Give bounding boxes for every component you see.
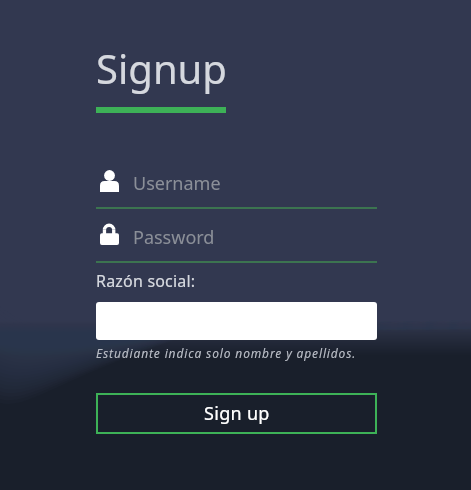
button[interactable]	[96, 302, 377, 340]
staticText: Razón social:	[96, 270, 196, 292]
other: Username	[100, 170, 119, 192]
button[interactable]: Username	[96, 166, 376, 208]
staticText: Sign up	[204, 401, 270, 426]
staticText: Username	[133, 171, 221, 196]
button[interactable]: Password	[96, 220, 376, 262]
button[interactable]: Sign up	[96, 393, 377, 434]
staticText: Estudiante indica solo nombre y apellido…	[96, 345, 357, 361]
staticText: Password	[133, 225, 215, 250]
staticText: Signup	[96, 41, 227, 95]
other: Password	[100, 223, 119, 245]
